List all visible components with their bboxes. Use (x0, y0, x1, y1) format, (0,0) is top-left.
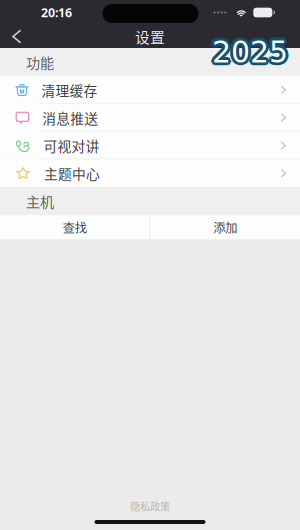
staticText: 主机 (26, 191, 54, 211)
button[interactable]: 清理缓存 (0, 76, 300, 104)
staticText: 可视对讲 (43, 136, 99, 155)
staticText: 2025 (214, 32, 290, 67)
staticText: 2025 (212, 34, 288, 69)
button[interactable]: 主题中心 (0, 159, 300, 187)
staticText: 隐私政策 (130, 499, 170, 513)
staticText: 查找 (63, 218, 87, 236)
staticText: 2025 (215, 34, 291, 69)
staticText: 功能 (26, 52, 54, 72)
button[interactable]: 消息推送 (0, 104, 300, 132)
staticText: 20:16 (41, 4, 72, 21)
button[interactable]: 查找 (0, 215, 150, 239)
staticText: 添加 (213, 218, 237, 236)
staticText: 2025 (212, 37, 288, 72)
staticText: 2025 (209, 34, 285, 69)
staticText: 清理缓存 (41, 80, 97, 100)
button[interactable]: 隐私政策 (126, 495, 174, 517)
staticText: 设置 (135, 26, 165, 47)
button[interactable]: Back (0, 26, 34, 47)
staticText: 2025 (212, 32, 288, 66)
staticText: 2025 (210, 32, 286, 67)
staticText: 消息推送 (42, 108, 98, 128)
staticText: 2025 (210, 37, 286, 71)
staticText: 2025 (214, 37, 290, 71)
button[interactable]: 可视对讲 (0, 132, 300, 159)
button[interactable]: 添加 (150, 215, 300, 239)
staticText: 主题中心 (44, 163, 100, 183)
